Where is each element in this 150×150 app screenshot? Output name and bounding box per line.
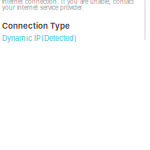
staticText: Connection Type — [2, 21, 70, 31]
staticText: internet connection. If you are unable, … — [2, 0, 134, 5]
button[interactable]: Dynamic IP(Detected) — [0, 34, 150, 43]
staticText: your internet service provider. — [2, 4, 84, 11]
staticText: Dynamic IP(Detected) — [2, 34, 77, 43]
